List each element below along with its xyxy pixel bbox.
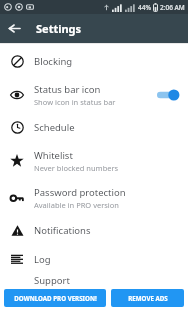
staticText: REMOVE ADS [128,294,168,302]
button[interactable]: Log [0,245,188,274]
button[interactable]: Blocking [0,47,188,76]
staticText: Password protection [34,186,126,199]
staticText: Status bar icon [34,83,101,96]
button[interactable]: Notifications [0,216,188,245]
staticText: 2:06 AM [160,3,185,12]
button[interactable]: Status bar icon [0,76,188,113]
staticText: Schedule [34,121,75,134]
staticText: Blocking [34,55,73,68]
staticText: Log [34,253,51,266]
staticText: Support [34,274,70,286]
staticText: DOWNLOAD PRO VERSION! [14,294,97,302]
staticText: Show icon in status bar [34,97,116,107]
button[interactable]: Password protection [0,179,188,216]
button[interactable]: Schedule [0,113,188,142]
button[interactable]: Support [0,274,188,286]
staticText: Whitelist [34,149,73,162]
staticText: Available in PRO version [34,200,119,210]
button[interactable]: Back [0,14,29,43]
button[interactable]: DOWNLOAD PRO VERSION! [4,289,106,307]
staticText: 44% [138,3,151,12]
staticText: Settings [36,21,82,36]
button[interactable]: Whitelist [0,142,188,179]
button[interactable]: REMOVE ADS [111,289,184,307]
button[interactable]: Status bar icon toggle [146,76,188,113]
staticText: Notifications [34,224,91,237]
staticText: Never blocked numbers [34,163,119,173]
